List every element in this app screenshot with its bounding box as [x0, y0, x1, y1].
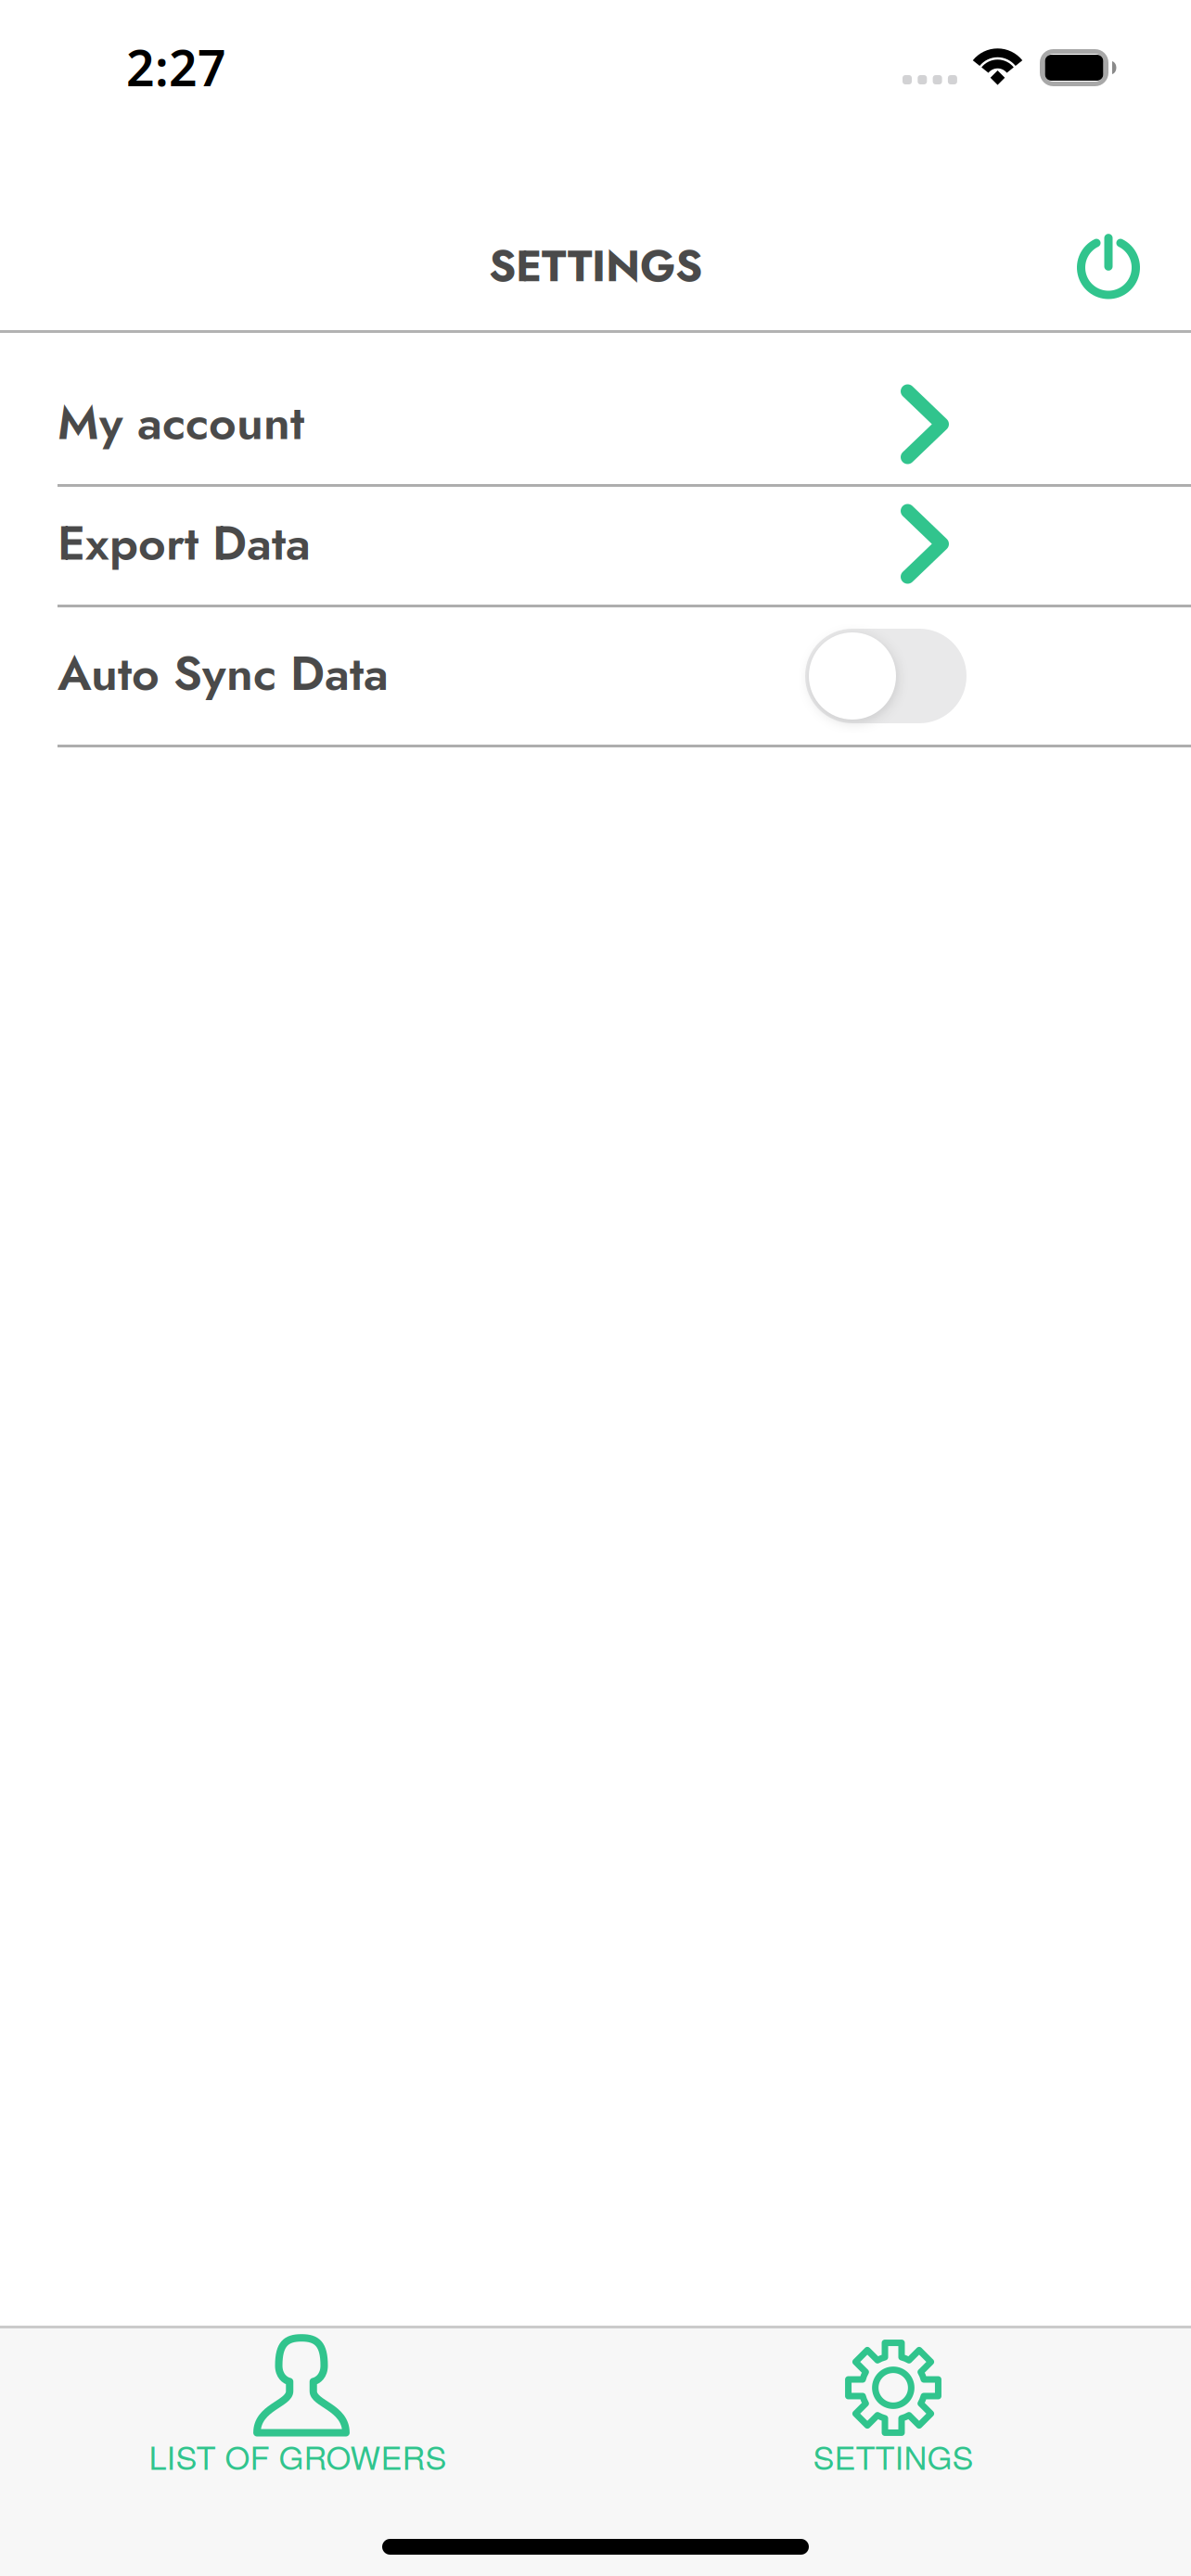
- staticText: LIST OF GROWERS: [149, 2433, 447, 2479]
- staticText: My account: [58, 388, 304, 457]
- staticText: Export Data: [58, 508, 311, 577]
- button[interactable]: SETTINGS: [595, 2328, 1191, 2501]
- button[interactable]: My account: [0, 333, 1191, 484]
- staticText: SETTINGS: [489, 235, 702, 298]
- button[interactable]: Power off: [1040, 130, 1191, 330]
- staticText: 2:27: [126, 34, 226, 100]
- staticText: SETTINGS: [813, 2433, 973, 2479]
- button[interactable]: Export Data: [0, 487, 1191, 605]
- staticText: Auto Sync Data: [58, 639, 389, 708]
- button[interactable]: LIST OF GROWERS: [0, 2328, 595, 2501]
- button[interactable]: Auto Sync Data: [805, 629, 967, 723]
